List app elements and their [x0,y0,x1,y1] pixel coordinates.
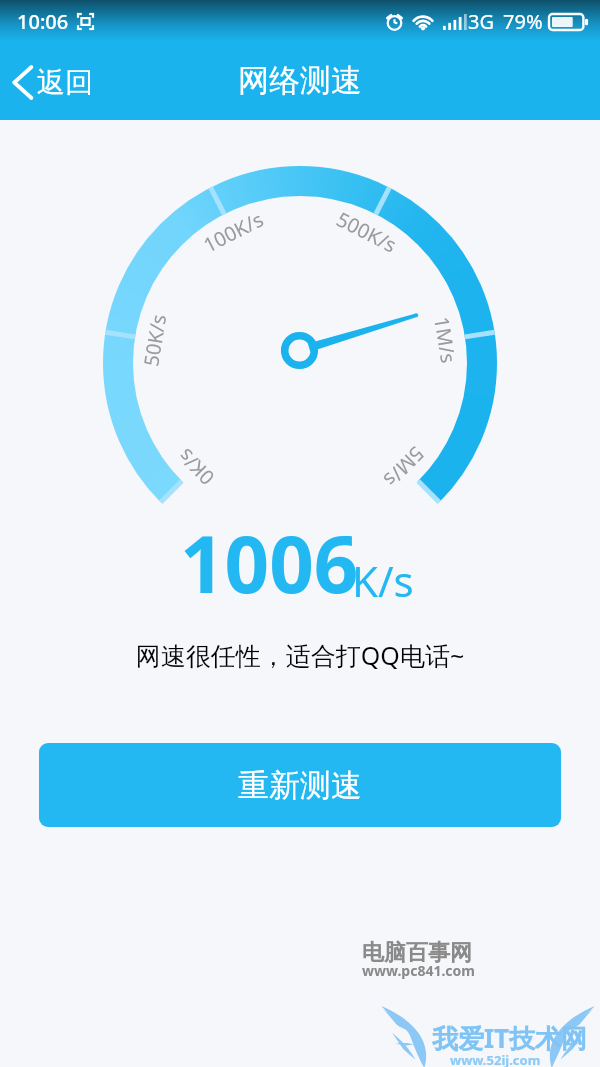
staticText: 1006 [180,510,359,616]
staticText: K/s [352,552,414,609]
staticText: 重新测速 [238,766,362,805]
staticText: 电脑百事网 [362,939,472,967]
staticText: www.pc841.com [362,961,475,980]
button[interactable]: 重新测速 [39,743,561,827]
button[interactable]: 返回 [0,55,111,110]
staticText: 网速很任性，适合打QQ电话~ [0,638,600,672]
staticText: 网络测速 [238,61,362,100]
staticText: 10:06 [17,8,69,35]
staticText: 返回 [37,65,93,100]
staticText: 79% [503,8,543,35]
staticText: www.52ij.com [450,1051,541,1067]
staticText: 3G [468,8,494,35]
staticText: 我爱IT技术网 [432,1020,588,1056]
